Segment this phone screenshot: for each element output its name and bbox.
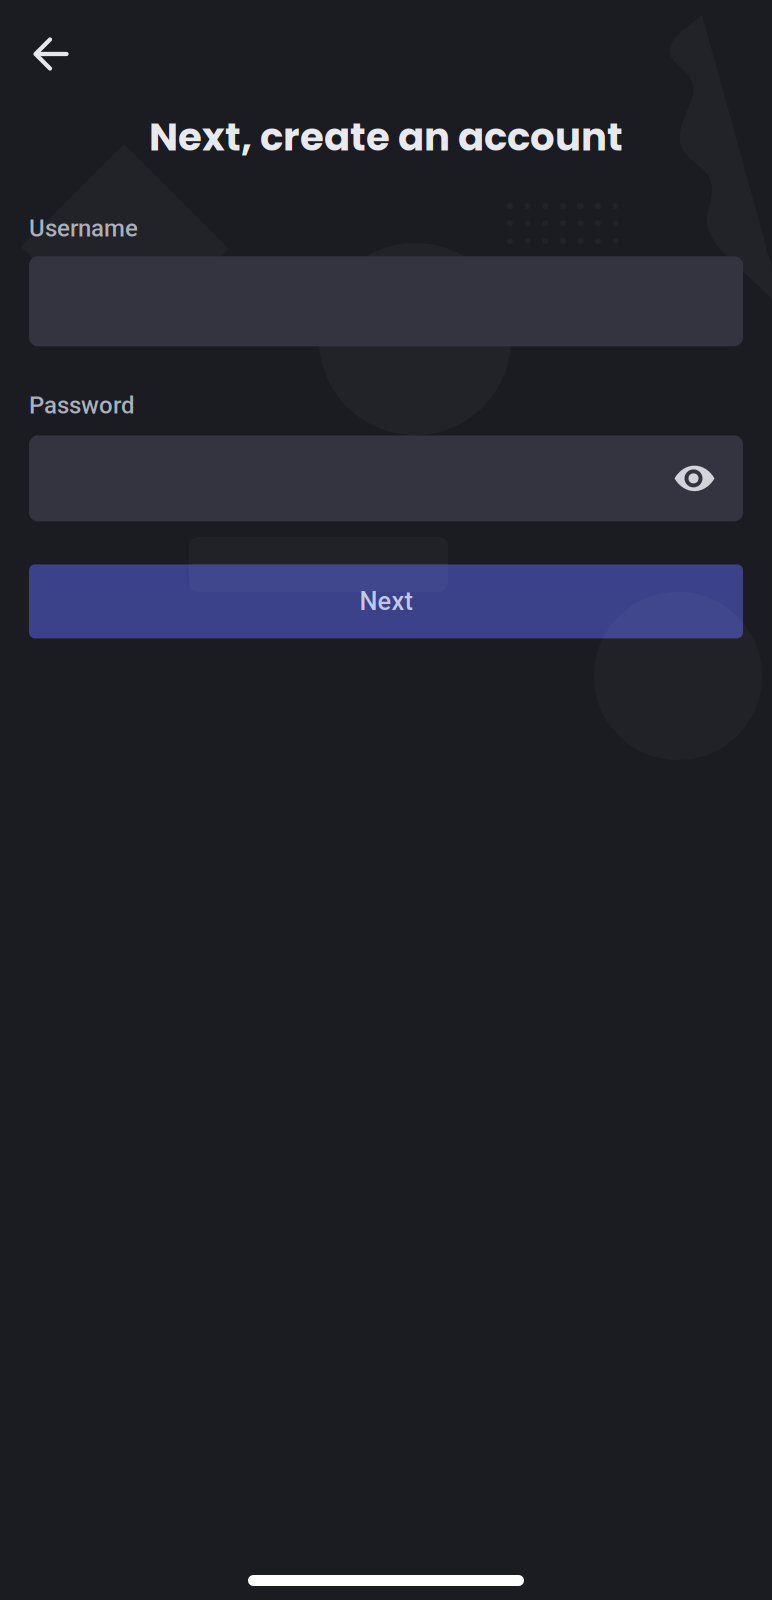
staticText: Password	[29, 391, 135, 419]
staticText: Next	[359, 586, 412, 616]
staticText: Next, create an account	[149, 110, 623, 164]
staticText: Username	[29, 214, 138, 242]
button[interactable]: Next	[29, 564, 743, 638]
button[interactable]: Back	[24, 27, 78, 81]
button[interactable]: Show password	[646, 435, 743, 521]
